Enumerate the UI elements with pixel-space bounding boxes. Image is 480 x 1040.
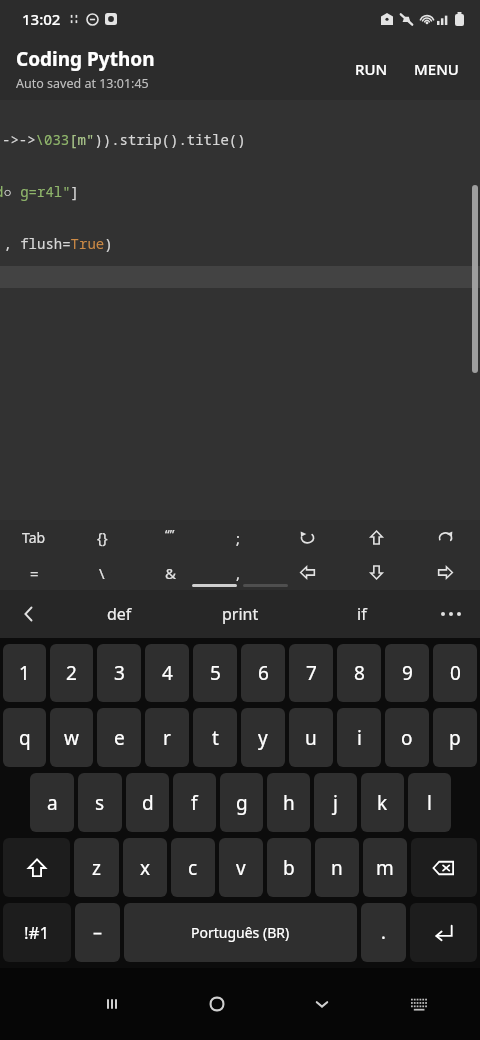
staticText: if xyxy=(357,603,367,625)
button[interactable]: 7 xyxy=(289,644,333,702)
staticText: def xyxy=(107,603,132,625)
staticText: . xyxy=(381,920,386,945)
staticText: g xyxy=(236,790,248,816)
staticText: 2 xyxy=(66,660,77,686)
button[interactable]: w xyxy=(50,708,93,767)
staticText: 6 xyxy=(258,660,269,686)
button[interactable]: MENU xyxy=(405,52,468,86)
button[interactable]: Move left xyxy=(273,555,342,590)
staticText: , xyxy=(236,563,241,583)
button[interactable]: , xyxy=(204,555,273,590)
button[interactable]: h xyxy=(267,773,310,832)
button[interactable]: ; xyxy=(204,520,273,555)
button[interactable]: Change keyboard xyxy=(374,968,464,1040)
button[interactable]: Tab xyxy=(0,520,68,555)
staticText: v xyxy=(236,855,246,881)
button[interactable]: RUN xyxy=(346,52,397,86)
button[interactable]: r xyxy=(145,708,189,767)
button[interactable]: t xyxy=(193,708,237,767)
button[interactable]: def xyxy=(58,590,180,638)
staticText: 4 xyxy=(162,660,173,686)
staticText: 0 xyxy=(450,660,461,686)
button[interactable]: Move up xyxy=(342,520,411,555)
button[interactable]: . xyxy=(361,903,406,962)
staticText: 1 xyxy=(19,660,30,686)
button[interactable]: 2 xyxy=(50,644,93,702)
button[interactable]: Redo xyxy=(411,520,480,555)
button[interactable]: Hide keyboard xyxy=(269,968,374,1040)
staticText: n xyxy=(331,855,343,881)
staticText: Auto saved at 13:01:45 xyxy=(16,75,149,92)
button[interactable]: z xyxy=(74,838,119,897)
button[interactable]: s xyxy=(78,773,122,832)
button[interactable]: 9 xyxy=(385,644,429,702)
button[interactable]: !#1 xyxy=(3,903,71,962)
button[interactable]: Português (BR) xyxy=(124,903,357,962)
staticText: “” xyxy=(165,525,175,543)
button[interactable]: q xyxy=(3,708,46,767)
button[interactable]: Enter xyxy=(410,903,477,962)
button[interactable]: 3 xyxy=(97,644,141,702)
button[interactable]: 8 xyxy=(337,644,381,702)
button[interactable]: & xyxy=(136,555,204,590)
button[interactable]: x xyxy=(123,838,167,897)
staticText: !#1 xyxy=(24,921,50,944)
button[interactable]: y xyxy=(241,708,285,767)
button[interactable]: j xyxy=(314,773,357,832)
button[interactable]: l xyxy=(408,773,451,832)
staticText: 7 xyxy=(306,660,317,686)
staticText: d xyxy=(142,790,154,816)
staticText: o xyxy=(401,725,413,751)
button[interactable]: “” xyxy=(136,520,204,555)
staticText: u xyxy=(305,725,317,751)
staticText: e xyxy=(114,725,125,751)
button[interactable]: Previous suggestions xyxy=(0,590,58,638)
button[interactable]: 4 xyxy=(145,644,189,702)
button[interactable]: Move right xyxy=(411,555,480,590)
button[interactable]: \ xyxy=(68,555,136,590)
button[interactable]: 6 xyxy=(241,644,285,702)
button[interactable]: o xyxy=(385,708,429,767)
button[interactable]: c xyxy=(171,838,215,897)
button[interactable]: – xyxy=(75,903,120,962)
button[interactable]: print xyxy=(180,590,301,638)
staticText: f xyxy=(191,790,198,816)
button[interactable]: 1 xyxy=(3,644,46,702)
button[interactable]: = xyxy=(0,555,68,590)
staticText: x xyxy=(140,855,151,881)
staticText: y xyxy=(258,725,268,751)
button[interactable]: v xyxy=(219,838,263,897)
staticText: p xyxy=(449,725,461,751)
staticText: ', flush=True) xyxy=(0,234,113,253)
button[interactable]: n xyxy=(315,838,359,897)
button[interactable]: 0 xyxy=(433,644,477,702)
button[interactable]: if xyxy=(301,590,422,638)
button[interactable]: e xyxy=(97,708,141,767)
button[interactable]: b xyxy=(267,838,311,897)
button[interactable]: Backspace xyxy=(411,838,477,897)
button[interactable]: Move down xyxy=(342,555,411,590)
button[interactable]: u xyxy=(289,708,333,767)
button[interactable]: i xyxy=(337,708,381,767)
staticText: RUN xyxy=(355,59,388,79)
button[interactable]: f xyxy=(173,773,216,832)
staticText: k xyxy=(377,790,388,816)
button[interactable]: a xyxy=(30,773,74,832)
button[interactable]: d xyxy=(126,773,169,832)
button[interactable]: More suggestions xyxy=(422,590,480,638)
button[interactable]: p xyxy=(433,708,477,767)
button[interactable]: k xyxy=(361,773,404,832)
button[interactable]: {} xyxy=(68,520,136,555)
button[interactable]: Shift xyxy=(3,838,70,897)
staticText: 5 xyxy=(210,660,221,686)
button[interactable]: Undo xyxy=(273,520,342,555)
button[interactable]: Home xyxy=(164,968,269,1040)
staticText: – xyxy=(93,920,102,945)
button[interactable]: g xyxy=(220,773,263,832)
button[interactable]: m xyxy=(363,838,407,897)
button[interactable]: 5 xyxy=(193,644,237,702)
staticText: c xyxy=(188,855,198,881)
staticText: \ xyxy=(99,563,105,583)
staticText: q xyxy=(19,725,31,751)
button[interactable]: Recent apps xyxy=(59,968,164,1040)
